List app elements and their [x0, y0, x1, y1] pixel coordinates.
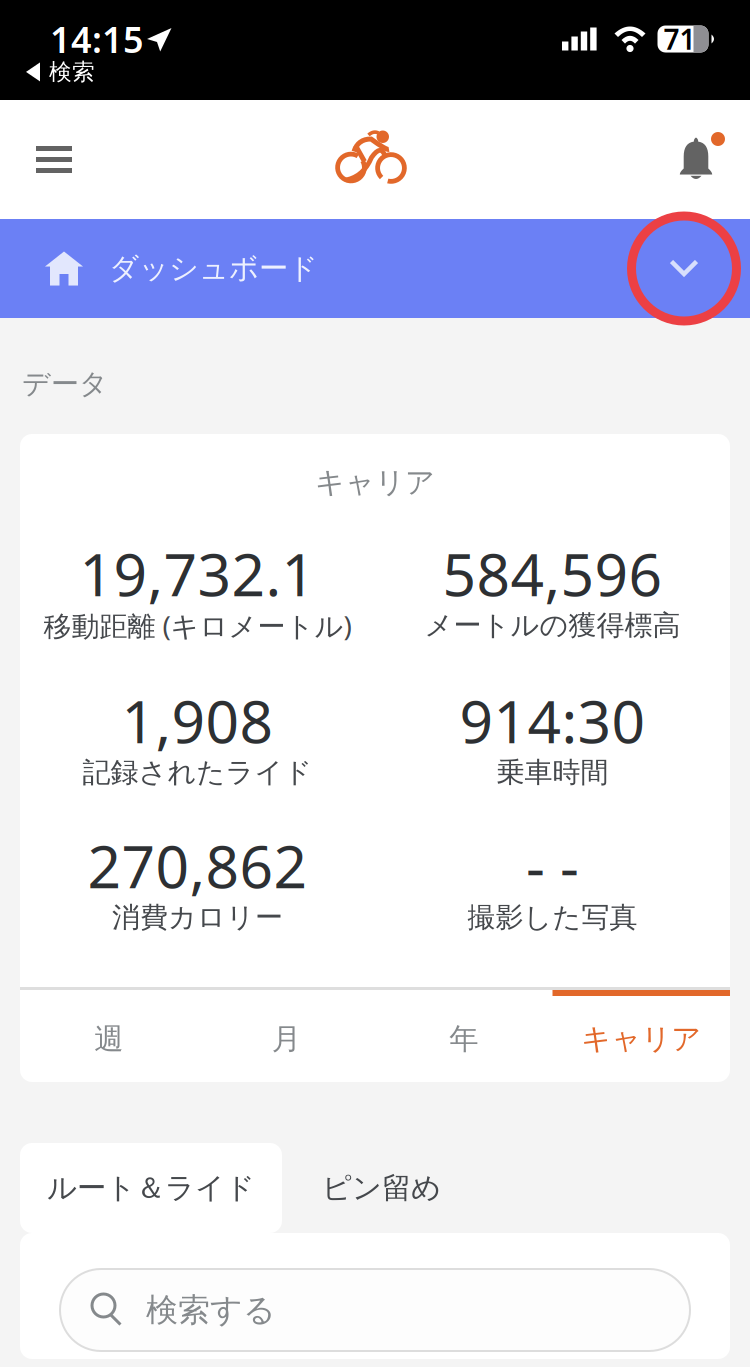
staticText: 14:15	[50, 15, 144, 63]
staticText: 撮影した写真	[467, 900, 637, 935]
staticText: 270,862	[87, 826, 307, 904]
staticText: - -	[526, 826, 579, 904]
staticText: 週	[94, 1021, 123, 1057]
button[interactable]: 年	[375, 990, 552, 1082]
staticText: 検索	[49, 58, 95, 86]
staticText: ダッシュボード	[109, 250, 318, 286]
staticText: 19,732.1	[79, 534, 315, 612]
staticText: 584,596	[442, 534, 662, 612]
staticText: 月	[272, 1021, 301, 1057]
staticText: キャリア	[315, 464, 435, 500]
button[interactable]: ピン留め	[295, 1143, 468, 1233]
button[interactable]: Menu	[0, 116, 102, 203]
button[interactable]: 週	[20, 990, 197, 1082]
staticText: 1,908	[121, 681, 273, 759]
staticText: 検索する	[146, 1290, 276, 1330]
staticText: 消費カロリー	[112, 900, 283, 935]
staticText: メートルの獲得標高	[424, 608, 680, 643]
staticText: データ	[22, 367, 108, 401]
button[interactable]: 検索する	[60, 1269, 690, 1351]
button[interactable]: Notifications	[649, 117, 750, 202]
staticText: ピン留め	[322, 1170, 441, 1206]
staticText: ルート＆ライド	[47, 1170, 255, 1206]
staticText: 乗車時間	[496, 755, 608, 790]
button[interactable]: ダッシュボード	[0, 211, 750, 325]
staticText: キャリア	[581, 1021, 701, 1057]
staticText: 移動距離 (キロメートル)	[43, 607, 351, 644]
staticText: 71	[663, 20, 695, 58]
staticText: 記録されたライド	[82, 755, 312, 790]
button[interactable]: キャリア	[552, 990, 730, 1082]
staticText: 914:30	[459, 681, 645, 759]
button[interactable]: ルート＆ライド	[20, 1143, 282, 1233]
button[interactable]: 月	[197, 990, 375, 1082]
staticText: 年	[449, 1021, 478, 1057]
